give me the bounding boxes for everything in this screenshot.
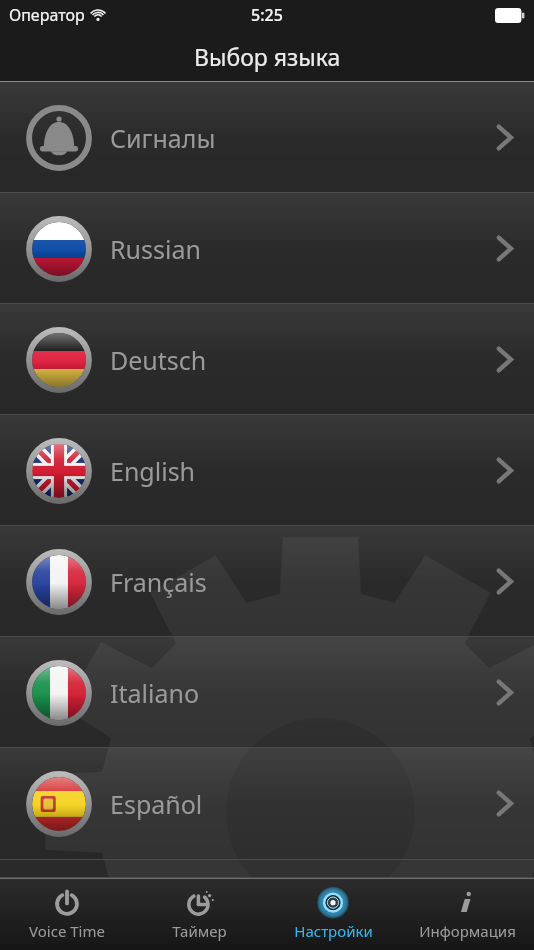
staticText: Оператор [9, 4, 85, 26]
staticText: Информация [419, 921, 516, 941]
staticText: Таймер [172, 921, 227, 941]
staticText: Сигналы [110, 121, 216, 155]
button[interactable]: Информация [400, 878, 534, 950]
staticText: Deutsch [110, 343, 207, 377]
button[interactable]: Español [0, 748, 534, 859]
staticText: Italiano [110, 676, 200, 710]
button[interactable]: Voice Time [0, 878, 133, 950]
staticText: Выбор языка [194, 41, 341, 72]
button[interactable]: Russian [0, 193, 534, 304]
button[interactable]: Français [0, 526, 534, 637]
button[interactable]: English [0, 415, 534, 526]
button[interactable]: Italiano [0, 637, 534, 748]
staticText: Настройки [294, 921, 373, 941]
staticText: 5:25 [251, 4, 283, 26]
button[interactable]: Таймер [133, 878, 266, 950]
button[interactable]: Deutsch [0, 304, 534, 415]
button[interactable]: Сигналы [0, 82, 534, 193]
staticText: Russian [110, 232, 201, 266]
staticText: Français [110, 565, 207, 599]
staticText: Voice Time [29, 921, 105, 941]
staticText: Español [110, 787, 203, 821]
button[interactable]: Настройки [266, 878, 400, 950]
staticText: English [110, 454, 196, 488]
